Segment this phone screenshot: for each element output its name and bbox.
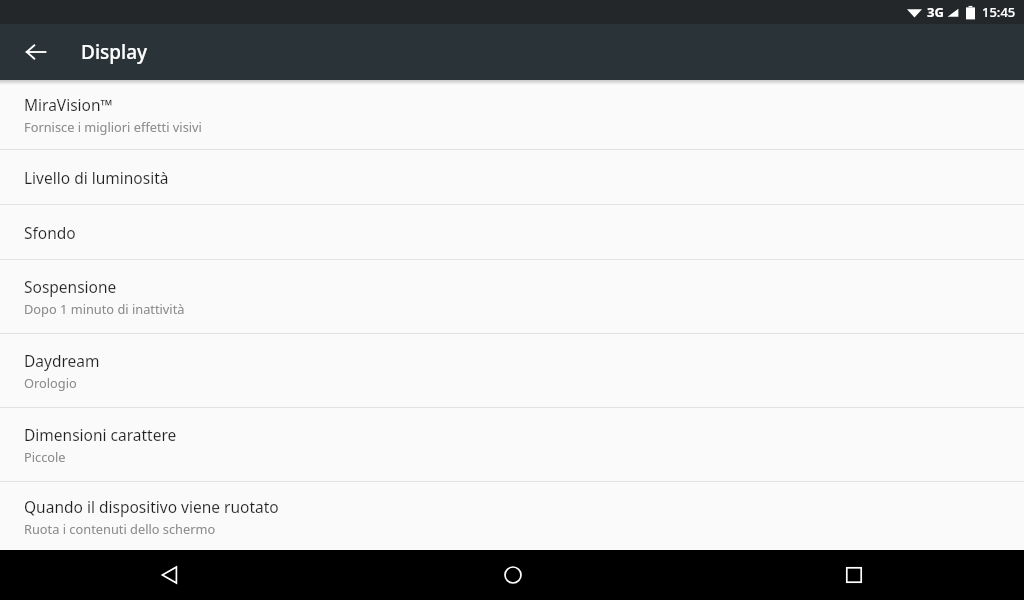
staticText: 15:45	[982, 3, 1016, 21]
staticText: Daydream	[24, 350, 100, 371]
button[interactable]: Back	[0, 550, 342, 600]
staticText: Display	[81, 39, 148, 65]
button[interactable]: Back	[12, 28, 60, 76]
button[interactable]: Quando il dispositivo viene ruotato	[0, 482, 1024, 550]
button[interactable]: Recent apps	[683, 550, 1024, 600]
staticText: Quando il dispositivo viene ruotato	[24, 496, 279, 517]
button[interactable]: Sospensione	[0, 260, 1024, 333]
staticText: Dimensioni carattere	[24, 424, 177, 445]
button[interactable]: Home	[342, 550, 683, 600]
staticText: Fornisce i migliori effetti visivi	[24, 118, 202, 135]
staticText: 3G	[927, 3, 944, 21]
staticText: Livello di luminosità	[24, 167, 169, 188]
button[interactable]: Dimensioni carattere	[0, 408, 1024, 481]
staticText: Dopo 1 minuto di inattività	[24, 300, 185, 317]
staticText: Orologio	[24, 374, 77, 391]
button[interactable]: Sfondo	[0, 205, 1024, 259]
staticText: Sfondo	[24, 222, 76, 243]
staticText: Piccole	[24, 448, 66, 465]
button[interactable]: MiraVision™	[0, 80, 1024, 149]
button[interactable]: Livello di luminosità	[0, 150, 1024, 204]
staticText: Ruota i contenuti dello schermo	[24, 520, 216, 537]
button[interactable]: Daydream	[0, 334, 1024, 407]
staticText: MiraVision™	[24, 94, 113, 115]
staticText: Sospensione	[24, 276, 117, 297]
